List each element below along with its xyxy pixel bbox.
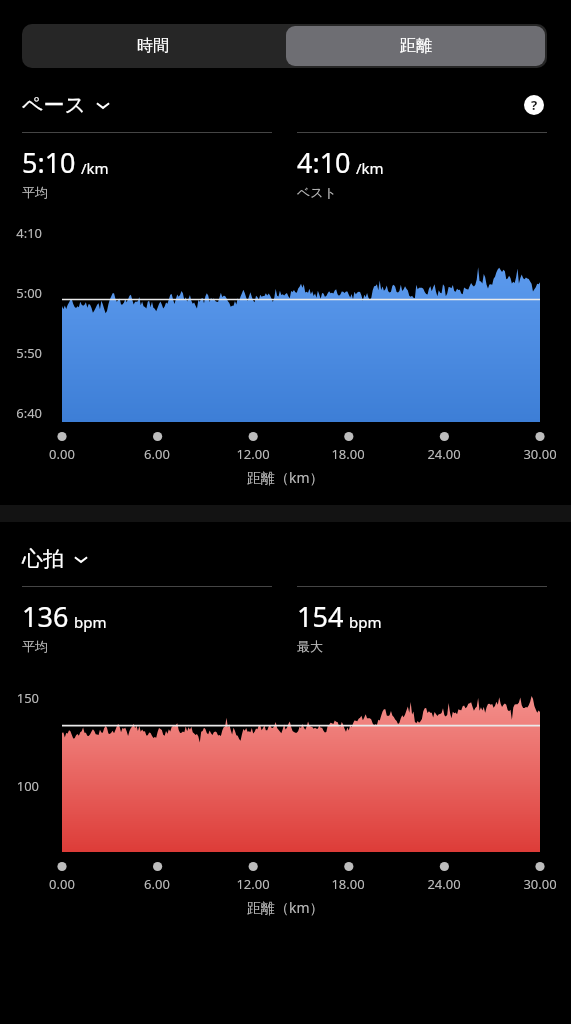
staticText: /km bbox=[356, 158, 384, 178]
staticText: 12.00 bbox=[236, 875, 270, 893]
staticText: 0.00 bbox=[49, 875, 75, 893]
staticText: 5:00 bbox=[16, 284, 42, 302]
staticText: 0.00 bbox=[49, 445, 75, 463]
staticText: 平均 bbox=[22, 184, 48, 200]
button[interactable]: 時間 bbox=[22, 24, 284, 68]
staticText: 30.00 bbox=[523, 445, 557, 463]
button[interactable]: 距離 bbox=[286, 26, 545, 66]
staticText: bpm bbox=[349, 612, 382, 632]
staticText: 100 bbox=[16, 777, 39, 795]
button[interactable]: ペース bbox=[22, 92, 112, 118]
staticText: 6.00 bbox=[144, 445, 170, 463]
staticText: 136 bbox=[22, 598, 69, 635]
staticText: 150 bbox=[16, 689, 39, 707]
staticText: 平均 bbox=[22, 638, 48, 654]
button[interactable]: 心拍 bbox=[22, 546, 90, 572]
staticText: 12.00 bbox=[236, 445, 270, 463]
staticText: 6.00 bbox=[144, 875, 170, 893]
staticText: 5:50 bbox=[16, 344, 42, 362]
staticText: 24.00 bbox=[427, 875, 461, 893]
staticText: ? bbox=[531, 96, 538, 114]
staticText: 距離（km） bbox=[247, 468, 324, 487]
staticText: ペース bbox=[22, 92, 86, 118]
staticText: 6:40 bbox=[16, 404, 42, 422]
staticText: 24.00 bbox=[427, 445, 461, 463]
staticText: 4:10 bbox=[297, 144, 351, 181]
staticText: 最大 bbox=[297, 638, 323, 654]
staticText: 4:10 bbox=[16, 224, 42, 242]
staticText: 時間 bbox=[137, 36, 169, 56]
staticText: 154 bbox=[297, 598, 344, 635]
staticText: 距離（km） bbox=[247, 898, 324, 917]
staticText: /km bbox=[81, 158, 109, 178]
staticText: 18.00 bbox=[331, 445, 365, 463]
button[interactable]: ヘルプ bbox=[521, 92, 547, 118]
staticText: 30.00 bbox=[523, 875, 557, 893]
staticText: 18.00 bbox=[331, 875, 365, 893]
staticText: 距離 bbox=[400, 36, 432, 56]
staticText: ベスト bbox=[297, 184, 337, 200]
staticText: 5:10 bbox=[22, 144, 76, 181]
staticText: bpm bbox=[74, 612, 107, 632]
staticText: 心拍 bbox=[22, 546, 64, 572]
